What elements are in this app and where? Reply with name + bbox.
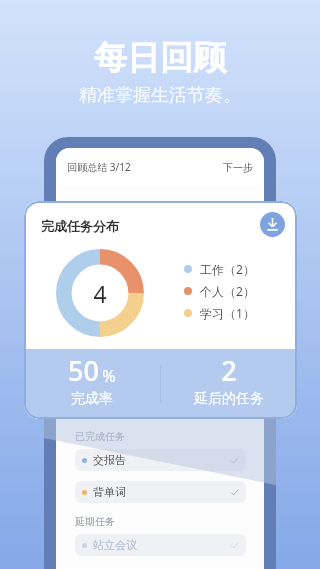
- staticText: 回顾总结 3/12: [67, 160, 131, 174]
- staticText: 50: [68, 352, 99, 389]
- staticText: 交报告: [93, 453, 126, 467]
- staticText: 完成任务分布: [41, 218, 119, 234]
- staticText: 学习（1）: [200, 305, 255, 321]
- staticText: 4: [93, 278, 107, 309]
- staticText: 延期任务: [75, 515, 115, 528]
- staticText: 已完成任务: [75, 430, 125, 443]
- staticText: 2: [221, 352, 237, 389]
- staticText: 延后的任务: [194, 390, 264, 408]
- staticText: 工作（2）: [200, 261, 255, 277]
- button[interactable]: 背单词: [75, 481, 246, 503]
- staticText: 站立会议: [93, 538, 137, 552]
- staticText: 精准掌握生活节奏。: [79, 84, 241, 107]
- button[interactable]: 交报告: [75, 449, 246, 471]
- staticText: 完成率: [71, 390, 113, 408]
- staticText: 下一步: [223, 161, 253, 174]
- staticText: 个人（2）: [200, 283, 255, 299]
- button[interactable]: 站立会议: [75, 534, 246, 556]
- staticText: 背单词: [93, 485, 126, 499]
- staticText: %: [102, 365, 116, 387]
- staticText: 每日回顾: [94, 37, 226, 79]
- button[interactable]: Download: [260, 212, 285, 237]
